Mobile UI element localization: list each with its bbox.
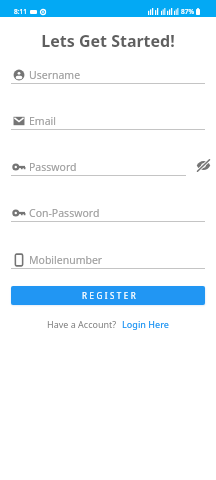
button[interactable]: Email [11, 112, 205, 130]
staticText: Lets Get Started! [0, 30, 216, 52]
button[interactable]: Login Here [122, 318, 169, 330]
staticText: 87% [181, 7, 194, 16]
staticText: Password [29, 160, 77, 174]
staticText: Mobilenumber [29, 253, 103, 267]
staticText: Have a Account? [47, 318, 117, 330]
staticText: Email [29, 114, 56, 128]
button[interactable]: Mobilenumber [11, 251, 205, 269]
button[interactable]: Con-Password [11, 204, 205, 222]
button[interactable]: Password [11, 158, 205, 176]
button[interactable]: REGISTER [11, 286, 205, 305]
staticText: Login Here [122, 318, 169, 330]
staticText: 8:11 [14, 7, 27, 16]
staticText: REGISTER [82, 290, 139, 301]
staticText: Con-Password [29, 206, 100, 220]
button[interactable]: Username [11, 66, 205, 84]
button[interactable]: Toggle password visibility [194, 156, 212, 174]
staticText: Username [29, 68, 81, 82]
